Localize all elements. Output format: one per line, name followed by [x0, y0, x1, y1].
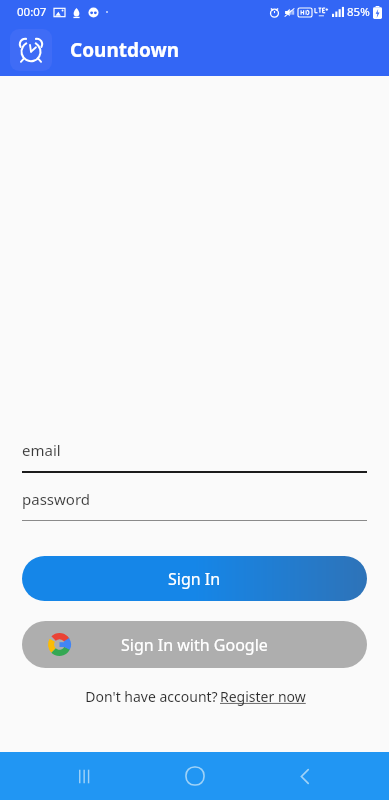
staticText: 85%: [347, 4, 370, 20]
staticText: Sign In: [168, 568, 221, 590]
button[interactable]: Back: [279, 752, 331, 800]
button[interactable]: Sign In with Google: [22, 621, 367, 668]
button[interactable]: App icon: [10, 29, 52, 71]
staticText: Register now: [220, 687, 306, 706]
staticText: Sign In with Google: [121, 634, 268, 656]
staticText: Don't have account?: [83, 687, 220, 706]
button[interactable]: email: [22, 440, 367, 473]
button[interactable]: password: [22, 489, 367, 521]
button[interactable]: Sign In: [22, 556, 367, 601]
staticText: 00:07: [17, 4, 47, 20]
staticText: Countdown: [70, 37, 180, 63]
button[interactable]: Home: [169, 752, 221, 800]
button[interactable]: Don't have account?: [0, 687, 389, 706]
button[interactable]: Recent apps: [58, 752, 110, 800]
staticText: password: [22, 489, 90, 509]
staticText: email: [22, 440, 61, 460]
